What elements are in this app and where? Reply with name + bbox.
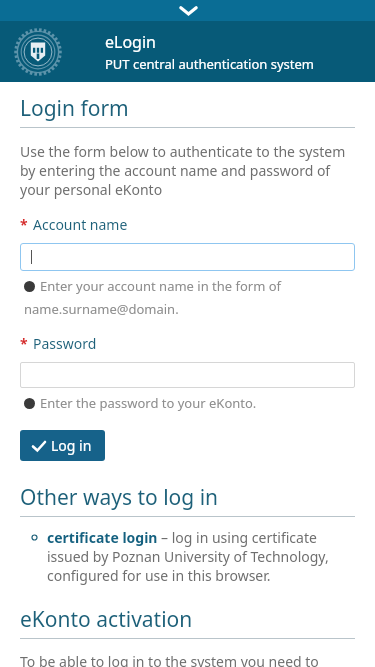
button[interactable]	[20, 362, 355, 388]
staticText: Other ways to log in	[20, 483, 219, 512]
staticText: issued by Poznan University of Technolog…	[47, 547, 329, 566]
staticText: your personal eKonto	[20, 180, 163, 199]
staticText: Login form	[20, 94, 129, 123]
button[interactable]: certificate login – log in using certifi…	[20, 528, 355, 585]
staticText: Password	[33, 334, 97, 353]
staticText: configured for use in this browser.	[47, 566, 271, 585]
staticText: name.surname@domain.	[24, 300, 179, 318]
staticText: Account name	[33, 215, 128, 234]
staticText: certificate login – log in using certifi…	[47, 528, 317, 547]
staticText: *	[20, 215, 28, 234]
staticText: Log in	[51, 436, 92, 455]
button[interactable]: Expand	[172, 0, 204, 21]
staticText: To be able to log in to the system you n…	[20, 652, 319, 667]
staticText: Use the form below to authenticate to th…	[20, 142, 346, 161]
button[interactable]	[20, 243, 355, 271]
button[interactable]: Log in	[20, 430, 105, 461]
staticText: Enter your account name in the form of	[40, 277, 282, 295]
staticText: Enter the password to your eKonto.	[40, 394, 257, 412]
staticText: by entering the account name and passwor…	[20, 161, 331, 180]
staticText: PUT central authentication system	[105, 55, 315, 73]
staticText: *	[20, 334, 28, 353]
staticText: eLogin	[105, 31, 156, 53]
staticText: eKonto activation	[20, 605, 193, 634]
